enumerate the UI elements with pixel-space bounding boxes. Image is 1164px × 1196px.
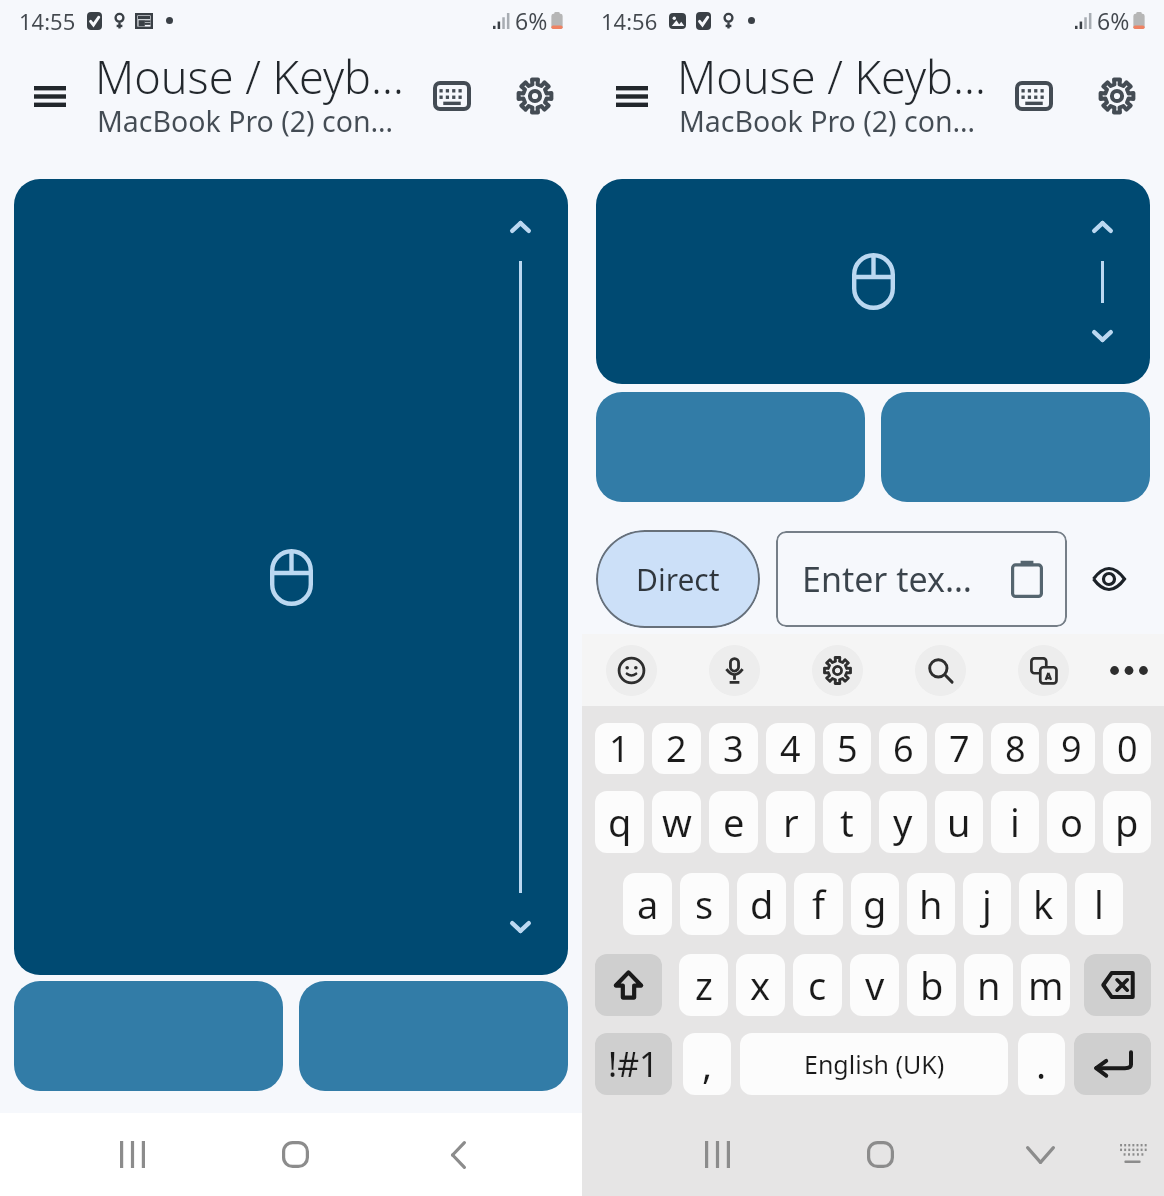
button[interactable]: Keyboard	[415, 45, 488, 179]
button[interactable]: y	[879, 791, 927, 853]
staticText: h	[919, 878, 943, 930]
button[interactable]: Left click	[14, 981, 283, 1091]
button[interactable]: 5	[823, 723, 871, 774]
button[interactable]: Voice input	[683, 634, 786, 706]
staticText: 9	[1061, 724, 1082, 773]
button[interactable]: Touchpad area	[596, 179, 1150, 384]
button[interactable]: Show text	[1076, 546, 1142, 612]
staticText: b	[920, 959, 944, 1011]
button[interactable]: m	[1021, 954, 1070, 1016]
button[interactable]: Emoji	[580, 634, 683, 706]
staticText: t	[840, 796, 854, 848]
staticText: n	[977, 959, 1001, 1011]
button[interactable]: Home	[799, 1113, 962, 1196]
staticText: l	[1094, 878, 1104, 930]
staticText: e	[723, 796, 745, 848]
button[interactable]: u	[935, 791, 983, 853]
button[interactable]: Backspace	[1084, 954, 1151, 1016]
button[interactable]: t	[823, 791, 871, 853]
staticText: 14:56	[601, 6, 658, 36]
staticText: 6	[893, 724, 914, 773]
button[interactable]: Direct	[596, 530, 760, 628]
button[interactable]: Keyboard	[997, 45, 1070, 179]
button[interactable]: x	[736, 954, 785, 1016]
button[interactable]: Touchpad area	[14, 179, 568, 975]
button[interactable]: j	[963, 873, 1011, 935]
button[interactable]: c	[793, 954, 842, 1016]
button[interactable]: .	[1018, 1033, 1065, 1095]
button[interactable]: e	[709, 791, 758, 853]
staticText: f	[812, 878, 826, 930]
staticText: 8	[1005, 724, 1026, 773]
button[interactable]: s	[680, 873, 729, 935]
staticText: c	[808, 959, 827, 1011]
button[interactable]: i	[991, 791, 1039, 853]
button[interactable]: Switch keyboard	[1119, 1113, 1146, 1196]
button[interactable]: 9	[1047, 723, 1095, 774]
button[interactable]: English (UK)	[740, 1033, 1008, 1095]
button[interactable]: Shift	[595, 954, 662, 1016]
button[interactable]: k	[1019, 873, 1067, 935]
button[interactable]: p	[1103, 791, 1151, 853]
button[interactable]: 6	[879, 723, 927, 774]
button[interactable]: 7	[935, 723, 983, 774]
button[interactable]: v	[850, 954, 899, 1016]
button[interactable]: 8	[991, 723, 1039, 774]
button[interactable]: Keyboard settings	[786, 634, 889, 706]
button[interactable]: ,	[683, 1033, 731, 1095]
staticText: 2	[666, 724, 687, 773]
staticText: k	[1033, 878, 1054, 930]
staticText: Mouse / Keyb…	[677, 46, 986, 107]
button[interactable]: Enter tex…	[776, 531, 1067, 627]
button[interactable]: Right click	[881, 392, 1150, 502]
staticText: v	[865, 959, 885, 1011]
staticText: 3	[723, 724, 744, 773]
button[interactable]: Settings	[1070, 45, 1164, 179]
button[interactable]: Back	[377, 1113, 540, 1196]
button[interactable]: o	[1047, 791, 1095, 853]
button[interactable]: 4	[766, 723, 815, 774]
button[interactable]: Home	[214, 1113, 377, 1196]
button[interactable]: More options	[1095, 634, 1162, 706]
staticText: m	[1028, 959, 1064, 1011]
button[interactable]: f	[794, 873, 843, 935]
staticText: g	[863, 878, 887, 930]
button[interactable]: Recent apps	[51, 1113, 214, 1196]
button[interactable]: d	[737, 873, 786, 935]
button[interactable]: w	[652, 791, 701, 853]
staticText: a	[637, 878, 659, 930]
staticText: !#1	[608, 1041, 659, 1087]
staticText: Direct	[636, 559, 720, 600]
button[interactable]: a	[623, 873, 672, 935]
button[interactable]: g	[851, 873, 899, 935]
button[interactable]: n	[964, 954, 1013, 1016]
staticText: MacBook Pro (2) con…	[679, 102, 976, 141]
staticText: z	[695, 959, 713, 1011]
button[interactable]: l	[1075, 873, 1123, 935]
button[interactable]: Open navigation menu	[0, 45, 100, 179]
staticText: ,	[702, 1038, 713, 1090]
button[interactable]: Search	[889, 634, 992, 706]
button[interactable]: Enter	[1074, 1033, 1151, 1095]
button[interactable]: Settings	[488, 45, 582, 179]
button[interactable]: Recent apps	[636, 1113, 799, 1196]
button[interactable]: Translate	[992, 634, 1095, 706]
button[interactable]: Open navigation menu	[582, 45, 682, 179]
button[interactable]: q	[595, 791, 644, 853]
staticText: y	[893, 796, 913, 848]
button[interactable]: 0	[1103, 723, 1151, 774]
button[interactable]: Right click	[299, 981, 568, 1091]
button[interactable]: b	[907, 954, 956, 1016]
button[interactable]: !#1	[595, 1033, 672, 1095]
button[interactable]: 2	[652, 723, 701, 774]
button[interactable]: 1	[595, 723, 644, 774]
button[interactable]: Hide keyboard	[962, 1113, 1119, 1196]
staticText: o	[1060, 796, 1083, 848]
button[interactable]: z	[679, 954, 728, 1016]
button[interactable]: h	[907, 873, 955, 935]
staticText: Enter tex…	[802, 556, 972, 602]
button[interactable]: 3	[709, 723, 758, 774]
button[interactable]: r	[766, 791, 815, 853]
staticText: q	[608, 796, 632, 848]
button[interactable]: Left click	[596, 392, 865, 502]
